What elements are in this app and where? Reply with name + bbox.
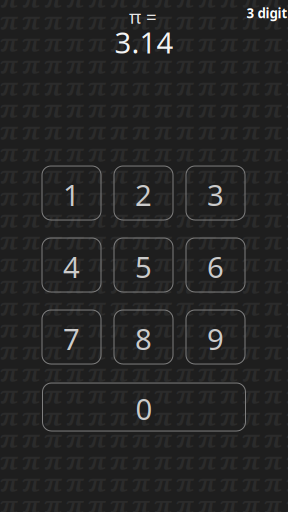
staticText: π: [0, 357, 18, 391]
button[interactable]: 9: [186, 310, 245, 364]
staticText: π: [286, 71, 288, 105]
staticText: π: [176, 247, 194, 281]
staticText: π: [286, 203, 288, 237]
staticText: π: [154, 27, 172, 61]
staticText: π: [44, 313, 62, 347]
button[interactable]: 3 digit: [246, 4, 287, 22]
button[interactable]: 5: [114, 238, 173, 292]
staticText: π: [44, 489, 62, 512]
staticText: π: [198, 159, 216, 193]
staticText: π: [242, 115, 260, 149]
staticText: π: [198, 203, 216, 237]
staticText: π: [110, 203, 128, 237]
button[interactable]: 2: [114, 166, 173, 220]
staticText: π: [44, 357, 62, 391]
button[interactable]: 7: [42, 310, 101, 364]
staticText: π: [176, 379, 194, 413]
staticText: 3 digit: [246, 4, 287, 22]
staticText: π: [22, 511, 40, 512]
staticText: π: [22, 357, 40, 391]
staticText: π: [66, 49, 84, 83]
staticText: π: [154, 291, 172, 325]
staticText: π: [198, 401, 216, 435]
staticText: π: [110, 489, 128, 512]
staticText: π: [220, 489, 238, 512]
staticText: π: [132, 0, 150, 17]
staticText: π: [264, 247, 282, 281]
staticText: π: [132, 203, 150, 237]
staticText: π: [154, 379, 172, 413]
staticText: π =: [129, 4, 157, 29]
staticText: π: [198, 313, 216, 347]
staticText: π: [176, 203, 194, 237]
staticText: π: [286, 27, 288, 61]
staticText: π: [88, 203, 106, 237]
staticText: π: [154, 357, 172, 391]
staticText: π: [286, 357, 288, 391]
staticText: π: [176, 313, 194, 347]
staticText: π: [264, 203, 282, 237]
staticText: π: [22, 335, 40, 369]
staticText: π: [264, 401, 282, 435]
button[interactable]: 8: [114, 310, 173, 364]
staticText: π: [110, 71, 128, 105]
staticText: π: [198, 357, 216, 391]
staticText: π: [286, 511, 288, 512]
staticText: π: [176, 49, 194, 83]
staticText: π: [198, 137, 216, 171]
staticText: π: [198, 0, 216, 17]
staticText: π: [220, 225, 238, 259]
staticText: π: [154, 401, 172, 435]
staticText: π: [0, 5, 18, 39]
staticText: π: [154, 0, 172, 17]
staticText: π: [286, 269, 288, 303]
staticText: π: [264, 5, 282, 39]
staticText: π: [110, 247, 128, 281]
staticText: π: [66, 0, 84, 17]
staticText: π: [154, 93, 172, 127]
staticText: π: [44, 203, 62, 237]
button[interactable]: 3: [186, 166, 245, 220]
staticText: π: [154, 467, 172, 501]
staticText: π: [242, 27, 260, 61]
staticText: π: [220, 313, 238, 347]
staticText: π: [110, 335, 128, 369]
staticText: π: [22, 5, 40, 39]
staticText: π: [154, 71, 172, 105]
staticText: π: [242, 137, 260, 171]
button[interactable]: 6: [186, 238, 245, 292]
staticText: π: [110, 357, 128, 391]
staticText: π: [264, 357, 282, 391]
staticText: π: [0, 423, 18, 457]
staticText: π: [176, 115, 194, 149]
staticText: π: [198, 445, 216, 479]
staticText: π: [132, 225, 150, 259]
staticText: π: [176, 423, 194, 457]
staticText: π: [132, 27, 150, 61]
staticText: π: [198, 225, 216, 259]
staticText: π: [176, 401, 194, 435]
staticText: π: [110, 291, 128, 325]
staticText: π: [242, 269, 260, 303]
staticText: π: [154, 335, 172, 369]
staticText: π: [220, 247, 238, 281]
staticText: π: [22, 203, 40, 237]
staticText: π: [176, 335, 194, 369]
staticText: π: [66, 313, 84, 347]
staticText: π: [110, 5, 128, 39]
staticText: π: [22, 71, 40, 105]
staticText: π: [88, 313, 106, 347]
staticText: π: [44, 225, 62, 259]
button[interactable]: 1: [42, 166, 101, 220]
staticText: 6: [207, 247, 224, 286]
button[interactable]: 0: [42, 383, 245, 431]
staticText: π: [176, 27, 194, 61]
staticText: π: [0, 247, 18, 281]
staticText: π: [264, 511, 282, 512]
staticText: π: [154, 181, 172, 215]
staticText: π: [110, 137, 128, 171]
staticText: π: [22, 49, 40, 83]
staticText: π: [88, 467, 106, 501]
button[interactable]: 4: [42, 238, 101, 292]
staticText: π: [154, 489, 172, 512]
